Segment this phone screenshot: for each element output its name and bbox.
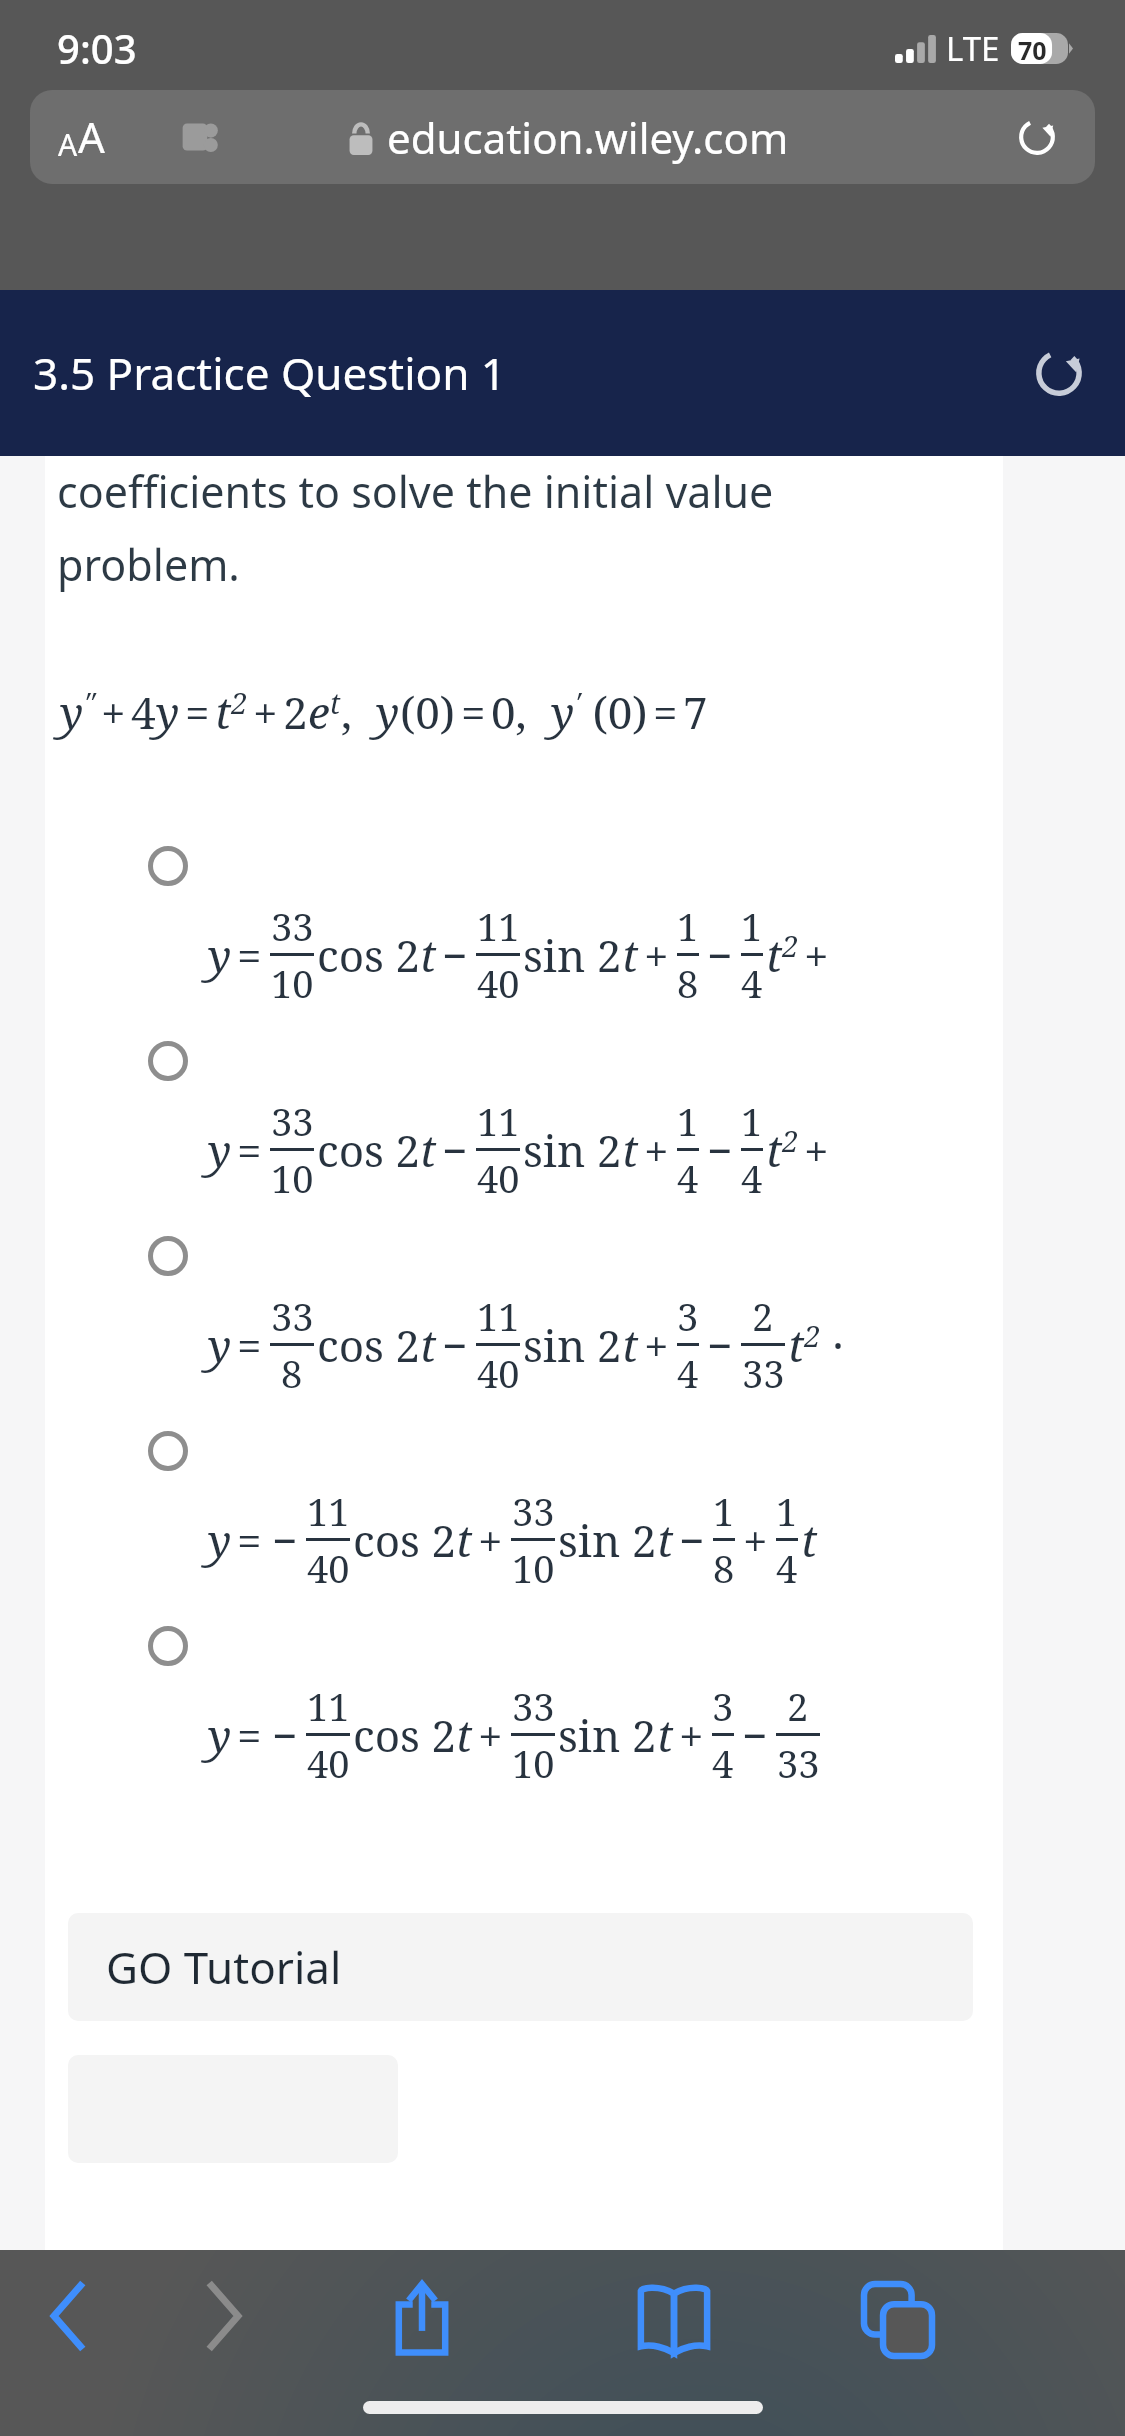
- staticText: t2: [215, 682, 248, 742]
- staticText: 40: [477, 1152, 520, 1204]
- button[interactable]: Tabs: [846, 2268, 950, 2372]
- staticText: 40: [307, 1542, 350, 1594]
- staticText: 33: [271, 1290, 314, 1342]
- staticText: y: [208, 1120, 232, 1180]
- staticText: y″: [60, 682, 96, 742]
- button[interactable]: y: [0, 838, 1125, 1033]
- button[interactable]: y: [0, 1033, 1125, 1228]
- staticText: 4: [741, 957, 763, 1009]
- button[interactable]: Text size options: [58, 108, 105, 165]
- staticText: et: [308, 682, 341, 742]
- staticText: t: [657, 1705, 674, 1765]
- staticText: 11: [477, 1290, 520, 1342]
- staticText: cos 2: [353, 1510, 456, 1570]
- button[interactable]: Bookmarks: [622, 2268, 726, 2372]
- staticText: A: [78, 108, 105, 165]
- staticText: t: [622, 925, 639, 985]
- staticText: y: [208, 1510, 232, 1570]
- staticText: y: [208, 1315, 232, 1375]
- button[interactable]: Share: [370, 2268, 474, 2372]
- staticText: −: [442, 1315, 468, 1375]
- staticText: =: [461, 682, 486, 742]
- staticText: +: [101, 682, 126, 742]
- staticText: t: [420, 925, 437, 985]
- staticText: problem.: [57, 535, 240, 594]
- staticText: cos 2: [317, 1120, 420, 1180]
- staticText: t: [420, 1120, 437, 1180]
- button[interactable]: y: [0, 1423, 1125, 1618]
- staticText: 11: [477, 1095, 520, 1147]
- other: Extensions: [180, 117, 224, 157]
- staticText: +: [478, 1510, 503, 1570]
- staticText: 4: [131, 682, 156, 742]
- button[interactable]: Text size options: [30, 90, 1095, 184]
- staticText: 1: [713, 1485, 735, 1537]
- staticText: 40: [307, 1737, 350, 1789]
- staticText: y: [156, 682, 180, 742]
- staticText: y′: [551, 682, 581, 742]
- staticText: t: [657, 1510, 674, 1570]
- staticText: =: [237, 1120, 262, 1180]
- staticText: t2: [788, 1315, 821, 1375]
- staticText: 33: [512, 1680, 555, 1732]
- staticText: −: [442, 925, 468, 985]
- staticText: sin 2: [523, 925, 622, 985]
- button[interactable]: Back: [22, 2268, 118, 2364]
- staticText: 10: [271, 957, 314, 1009]
- staticText: 3.5 Practice Question 1: [33, 343, 506, 403]
- staticText: sin 2: [523, 1315, 622, 1375]
- staticText: t: [622, 1120, 639, 1180]
- staticText: 10: [271, 1152, 314, 1204]
- button[interactable]: GO Tutorial: [68, 1913, 973, 2021]
- staticText: +: [253, 682, 278, 742]
- staticText: 1: [741, 900, 763, 952]
- staticText: t2: [766, 925, 799, 985]
- staticText: +: [644, 1120, 669, 1180]
- staticText: cos 2: [317, 1315, 420, 1375]
- staticText: LTE: [946, 26, 1000, 71]
- staticText: +: [743, 1510, 768, 1570]
- staticText: 0,: [491, 682, 527, 742]
- staticText: sin 2: [523, 1120, 622, 1180]
- staticText: 10: [512, 1737, 555, 1789]
- staticText: 3: [677, 1290, 699, 1342]
- button[interactable]: y: [0, 1618, 1125, 1813]
- staticText: sin 2: [558, 1705, 657, 1765]
- button[interactable]: Forward: [174, 2268, 270, 2364]
- staticText: 7: [683, 682, 708, 742]
- staticText: +: [644, 925, 669, 985]
- staticText: −: [272, 1705, 298, 1765]
- staticText: −: [707, 1120, 733, 1180]
- staticText: 8: [677, 957, 699, 1009]
- staticText: 11: [307, 1680, 350, 1732]
- staticText: −: [707, 925, 733, 985]
- staticText: +: [478, 1705, 503, 1765]
- staticText: sin 2: [558, 1510, 657, 1570]
- staticText: 1: [677, 1095, 699, 1147]
- staticText: 40: [477, 1347, 520, 1399]
- staticText: 33: [512, 1485, 555, 1537]
- staticText: 10: [512, 1542, 555, 1594]
- staticText: 11: [477, 900, 520, 952]
- staticText: 2: [752, 1290, 774, 1342]
- staticText: 11: [307, 1485, 350, 1537]
- staticText: −: [707, 1315, 733, 1375]
- staticText: 1: [741, 1095, 763, 1147]
- staticText: 9:03: [57, 21, 137, 75]
- staticText: 4: [712, 1737, 734, 1789]
- staticText: cos 2: [353, 1705, 456, 1765]
- button[interactable]: Reload page: [1015, 115, 1059, 159]
- button[interactable]: y: [0, 1228, 1125, 1423]
- staticText: =: [237, 1510, 262, 1570]
- staticText: −: [742, 1705, 768, 1765]
- staticText: =: [237, 925, 262, 985]
- button[interactable]: Refresh question: [1031, 345, 1087, 401]
- staticText: +: [804, 1120, 829, 1180]
- staticText: coefficients to solve the initial value: [57, 462, 774, 521]
- staticText: 40: [477, 957, 520, 1009]
- staticText: t: [456, 1510, 473, 1570]
- staticText: t: [456, 1705, 473, 1765]
- staticText: 8: [713, 1542, 735, 1594]
- staticText: t: [622, 1315, 639, 1375]
